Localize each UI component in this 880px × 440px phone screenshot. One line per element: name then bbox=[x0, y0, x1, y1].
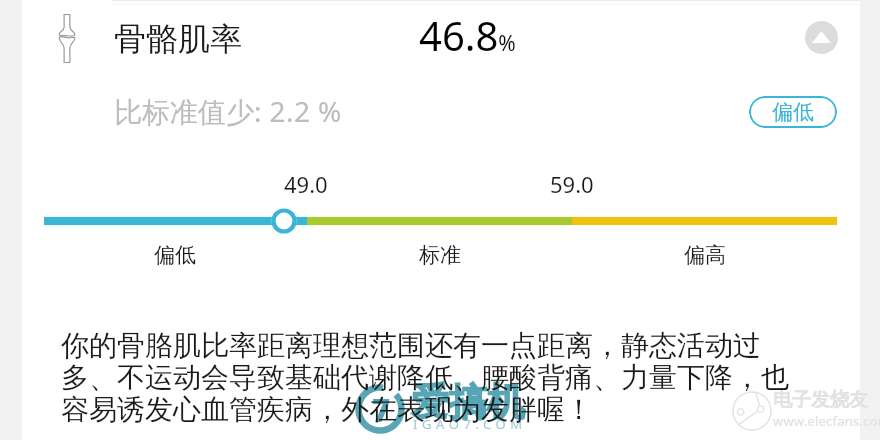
staticText: IGAO7.COM bbox=[413, 415, 527, 433]
staticText: 标准 bbox=[419, 242, 461, 268]
button[interactable]: Collapse bbox=[805, 21, 838, 54]
staticText: www.elecfans.com bbox=[773, 412, 880, 430]
staticText: 7 bbox=[372, 389, 391, 431]
staticText: 偏低 bbox=[772, 99, 814, 125]
staticText: 骨骼肌率 bbox=[114, 19, 242, 59]
staticText: 爱搞机 bbox=[411, 378, 525, 426]
staticText: 偏高 bbox=[684, 242, 726, 268]
staticText: 59.0 bbox=[550, 169, 594, 199]
button[interactable]: 骨骼肌率 bbox=[22, 8, 858, 68]
button[interactable]: 偏低 bbox=[749, 96, 837, 128]
staticText: 46.8% bbox=[419, 8, 516, 62]
staticText: 你的骨胳肌比率距离理想范围还有一点距离，静态活动过多、不运动会导致基础代谢降低、… bbox=[61, 328, 806, 428]
staticText: 49.0 bbox=[284, 169, 328, 199]
staticText: 电子发烧友 bbox=[773, 388, 868, 412]
staticText: 比标准值少: 2.2 % bbox=[114, 92, 342, 130]
staticText: 偏低 bbox=[154, 242, 196, 268]
